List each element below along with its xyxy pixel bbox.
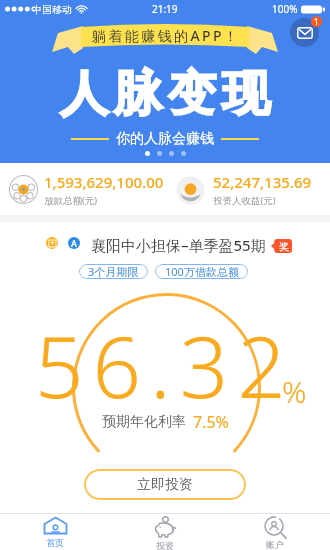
staticText: 3个月期限 [88,264,139,279]
staticText: 首页 [46,537,64,548]
staticText: 襄阳中小担保–单季盈55期 [91,235,266,255]
button[interactable]: 首页 [0,514,110,550]
button[interactable]: 账户 [220,514,330,550]
staticText: 奖 [279,240,289,253]
staticText: 你的人脉会赚钱 [116,130,214,148]
staticText: 躺着能赚钱的APP！ [92,26,241,45]
staticText: 100万借款总额 [165,264,239,279]
staticText: 1 [314,16,319,27]
staticText: 预期年化利率 [102,413,186,431]
staticText: 7.5% [193,411,229,433]
staticText: 投资 [156,540,174,550]
button[interactable]: Messages [290,18,319,47]
staticText: 人脉变现 [57,64,273,124]
button[interactable]: 100万借款总额 [155,264,248,279]
staticText: 中国移动 [32,3,72,16]
staticText: 投资人收益(元) [213,194,276,207]
staticText: 放款总额(元) [44,194,98,207]
staticText: 52,247,135.69 [213,172,312,192]
staticText: 56.32 [35,307,295,423]
staticText: 立即投资 [137,476,193,494]
staticText: A [71,237,77,249]
button[interactable]: 投资 [110,514,220,550]
staticText: 100% [272,2,298,16]
staticText: % [282,371,307,412]
staticText: 账户 [266,539,284,550]
staticText: 21:19 [152,2,178,16]
button[interactable]: 立即投资 [84,469,246,500]
staticText: 1,593,629,100.00 [44,172,164,192]
button[interactable]: 3个月期限 [79,264,148,279]
